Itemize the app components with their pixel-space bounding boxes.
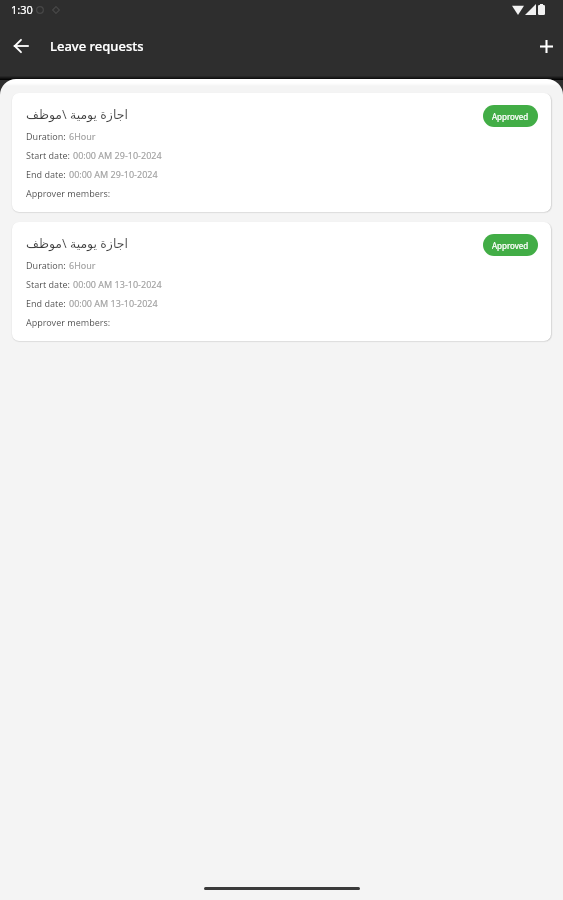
staticText: 00:00 AM 13-10-2024 bbox=[73, 278, 162, 290]
staticText: 6Hour bbox=[69, 130, 96, 142]
staticText: Approver members: bbox=[26, 316, 111, 328]
staticText: Approver members: bbox=[26, 187, 111, 199]
button[interactable]: Approved bbox=[483, 234, 538, 256]
staticText: Duration: bbox=[26, 259, 69, 271]
staticText: اجازة يومية \موظف bbox=[26, 235, 128, 252]
staticText: 00:00 AM 29-10-2024 bbox=[69, 168, 158, 180]
staticText: Leave requests bbox=[50, 37, 144, 55]
button[interactable]: Add bbox=[531, 31, 561, 61]
staticText: 00:00 AM 13-10-2024 bbox=[69, 297, 158, 309]
staticText: Approved bbox=[492, 240, 529, 251]
staticText: 1:30 bbox=[11, 2, 33, 17]
button[interactable]: Approved bbox=[483, 105, 538, 127]
staticText: 00:00 AM 29-10-2024 bbox=[73, 149, 162, 161]
button[interactable]: Back bbox=[5, 30, 37, 62]
staticText: Duration: bbox=[26, 130, 69, 142]
staticText: End date: bbox=[26, 297, 69, 309]
button[interactable]: اجازة يومية \موظف bbox=[12, 93, 551, 212]
staticText: Start date: bbox=[26, 278, 73, 290]
staticText: End date: bbox=[26, 168, 69, 180]
staticText: 6Hour bbox=[69, 259, 96, 271]
staticText: Start date: bbox=[26, 149, 73, 161]
button[interactable]: اجازة يومية \موظف bbox=[12, 222, 551, 341]
staticText: اجازة يومية \موظف bbox=[26, 106, 128, 123]
staticText: Approved bbox=[492, 111, 529, 122]
